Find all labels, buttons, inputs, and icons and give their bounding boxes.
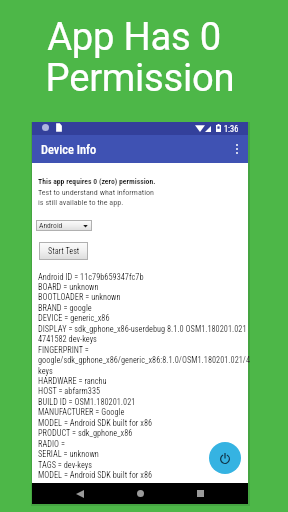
staticText: SERIAL = unknown [38, 449, 99, 459]
button[interactable]: More options [226, 135, 248, 163]
button[interactable]: Recents [190, 483, 210, 504]
button[interactable]: Android [36, 220, 92, 231]
staticText: PRODUCT = sdk_gphone_x86 [38, 428, 133, 438]
staticText: DEVICE = generic_x86 [38, 313, 110, 323]
staticText: MODEL = Android SDK built for x86 [38, 418, 153, 428]
staticText: Start Test [48, 246, 80, 256]
staticText: HARDWARE = ranchu [38, 376, 107, 386]
staticText: BRAND = google [38, 303, 92, 313]
staticText: FINGERPRINT = [38, 345, 89, 355]
staticText: TAGS = dev-keys [38, 460, 93, 470]
staticText: App Has 0 [0, 15, 278, 60]
staticText: Android [39, 221, 63, 230]
staticText: Android ID = 11c79b659347fc7b [38, 272, 144, 282]
staticText: is still available to the app. [38, 197, 124, 206]
staticText: MODEL = Android SDK built for x86 [38, 470, 153, 480]
staticText: Permission [0, 56, 284, 101]
staticText: RADIO = [38, 439, 65, 449]
staticText: Test to understand what information [38, 187, 155, 196]
staticText: 4741582 dev-keys [38, 334, 97, 344]
button[interactable]: Home [130, 483, 150, 504]
staticText: BOOTLOADER = unknown [38, 292, 121, 302]
staticText: keys [38, 366, 53, 376]
staticText: google/sdk_gphone_x86/generic_x86:8.1.0/… [38, 355, 251, 365]
button[interactable]: Start Test [39, 242, 88, 260]
staticText: 1:36 [224, 124, 239, 134]
button[interactable]: Back [70, 483, 90, 504]
staticText: BOARD = unknown [38, 282, 99, 292]
staticText: MANUFACTURER = Google [38, 407, 125, 417]
staticText: Device Info [41, 142, 97, 157]
staticText: BUILD ID = OSM1.180201.021 [38, 397, 136, 407]
staticText: This app requires 0 (zero) permission. [38, 177, 156, 186]
staticText: HOST = abfarm335 [38, 386, 101, 396]
staticText: DISPLAY = sdk_gphone_x86-userdebug 8.1.0… [38, 324, 247, 334]
button[interactable]: Power [209, 442, 241, 474]
